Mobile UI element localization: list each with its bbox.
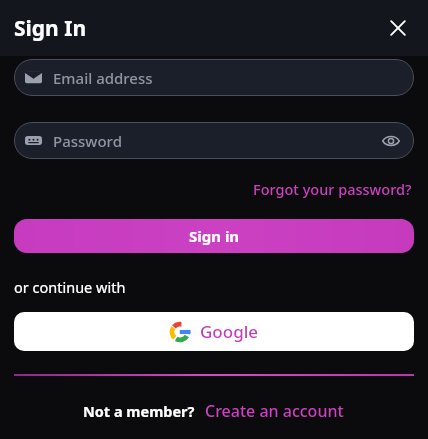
button[interactable]: Forgot your password? xyxy=(251,177,414,201)
button[interactable]: Sign in xyxy=(14,219,414,253)
button[interactable]: Show password xyxy=(379,129,403,153)
staticText: Not a member? xyxy=(83,401,195,421)
staticText: Password xyxy=(53,131,122,151)
staticText: Forgot your password? xyxy=(253,179,412,199)
staticText: Sign in xyxy=(189,226,240,246)
staticText: Create an account xyxy=(205,400,344,422)
staticText: Google xyxy=(200,320,259,343)
button[interactable]: Google xyxy=(14,312,414,351)
staticText: Sign In xyxy=(14,14,87,43)
staticText: Email address xyxy=(53,68,153,88)
staticText: or continue with xyxy=(14,277,126,297)
button[interactable]: Close xyxy=(378,8,418,48)
button[interactable]: Password xyxy=(14,122,414,159)
button[interactable]: Create an account xyxy=(203,398,346,424)
button[interactable]: Email address xyxy=(14,59,414,96)
